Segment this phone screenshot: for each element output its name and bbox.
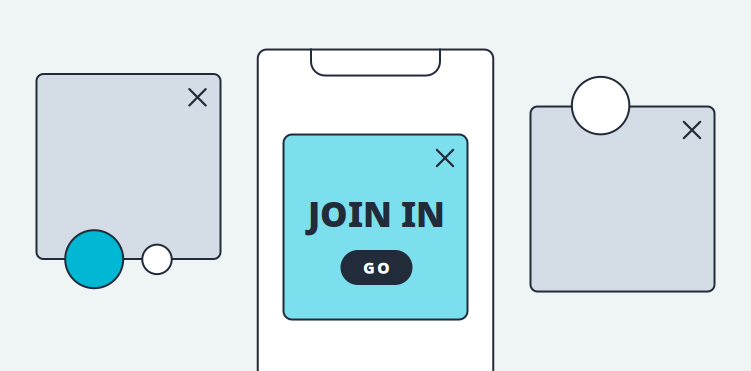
- button[interactable]: Close: [432, 145, 458, 171]
- staticText: JOIN IN: [308, 190, 445, 236]
- button[interactable]: Close: [679, 117, 705, 143]
- button[interactable]: Close: [184, 84, 210, 110]
- staticText: GO: [363, 257, 390, 278]
- button[interactable]: GO: [340, 250, 412, 285]
